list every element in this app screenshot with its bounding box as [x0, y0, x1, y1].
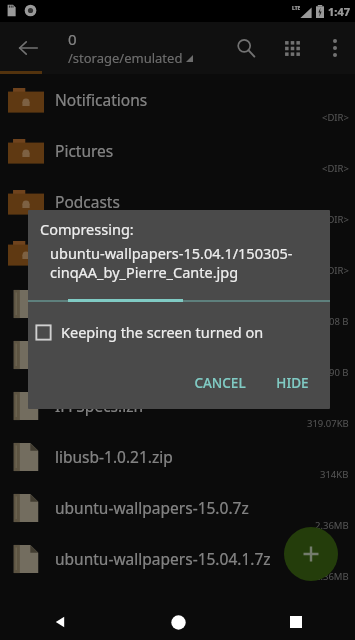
staticText: <DIR>	[322, 213, 349, 226]
button[interactable]: libusb-1.0.21.zip	[0, 431, 355, 482]
staticText: 90 B	[329, 366, 349, 379]
staticText: 2.36MB	[315, 519, 349, 532]
staticText: 2.36MB	[315, 570, 349, 583]
button[interactable]: Back	[6, 26, 50, 70]
button[interactable]: IFFSpecs.lzh	[0, 380, 355, 431]
button[interactable]: Add	[284, 527, 338, 581]
staticText: Pictures	[55, 140, 114, 161]
button[interactable]: Search	[223, 25, 269, 71]
button[interactable]: HIDE	[265, 366, 320, 400]
staticText: Compressing:	[40, 219, 134, 239]
staticText: 0	[68, 29, 77, 49]
button[interactable]: Back	[0, 604, 119, 640]
button[interactable]: CANCEL	[183, 366, 257, 400]
button[interactable]: Home	[119, 604, 237, 640]
staticText: CANCEL	[194, 374, 246, 392]
staticText: <DIR>	[322, 162, 349, 175]
button[interactable]: 0	[68, 29, 193, 67]
button[interactable]: Grid view	[269, 25, 315, 71]
staticText: Keeping the screen turned on	[61, 322, 264, 342]
button[interactable]: Ringtones	[0, 227, 355, 278]
staticText: <DIR>	[322, 264, 349, 277]
button[interactable]: Download.7z	[0, 329, 355, 380]
button[interactable]: archive.zip	[0, 278, 355, 329]
staticText: ubuntu-wallpapers-15.0.7z	[55, 497, 249, 518]
staticText: IFFSpecs.lzh	[55, 395, 144, 416]
staticText: ubuntu-wallpapers-15.04.1/150305-cinqAA_…	[50, 243, 320, 282]
staticText: Podcasts	[55, 191, 120, 212]
staticText: 1.08 B	[321, 315, 349, 328]
staticText: /storage/emulated	[68, 49, 183, 67]
button[interactable]: Notifications	[0, 74, 355, 125]
button[interactable]: ubuntu-wallpapers-15.04.1.7z	[0, 533, 355, 584]
button[interactable]: Podcasts	[0, 176, 355, 227]
staticText: Ringtones	[55, 242, 129, 263]
staticText: HIDE	[276, 374, 309, 392]
staticText: archive.zip	[55, 293, 133, 314]
staticText: <DIR>	[322, 111, 349, 124]
button[interactable]: Pictures	[0, 125, 355, 176]
staticText: ubuntu-wallpapers-15.04.1.7z	[55, 548, 271, 569]
staticText: libusb-1.0.21.zip	[55, 446, 173, 467]
staticText: Notifications	[55, 89, 148, 110]
staticText: 1:47	[328, 4, 350, 19]
staticText: 319.07KB	[307, 417, 349, 430]
button[interactable]: Recent apps	[237, 604, 355, 640]
button[interactable]: Keeping the screen turned on	[35, 318, 330, 346]
staticText: LTE	[292, 5, 301, 12]
button[interactable]: ubuntu-wallpapers-15.0.7z	[0, 482, 355, 533]
staticText: 314KB	[320, 468, 349, 481]
button[interactable]: More options	[315, 28, 355, 68]
